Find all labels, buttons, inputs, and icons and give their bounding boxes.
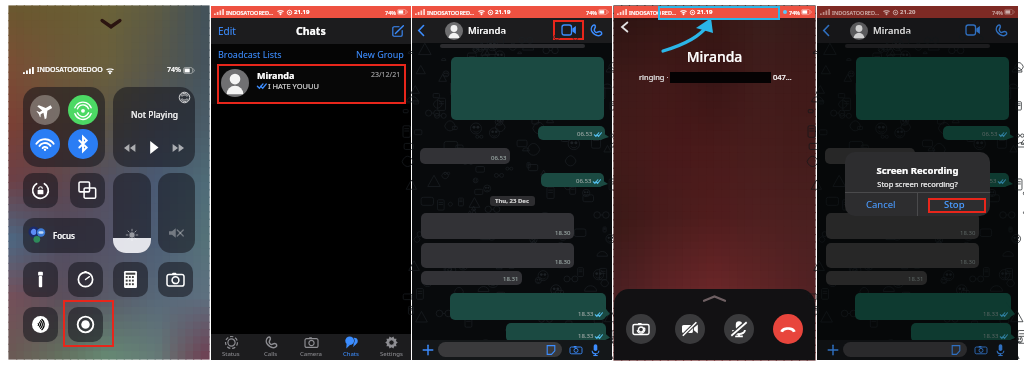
button[interactable]: Wi-Fi	[30, 129, 60, 159]
staticText: 06.53	[982, 130, 998, 138]
staticText: 06.53	[576, 177, 592, 185]
staticText: 06.53	[577, 130, 593, 138]
staticText: INDOSATOORED…	[832, 9, 880, 16]
button[interactable]	[538, 126, 605, 140]
button[interactable]: Edit	[218, 24, 236, 38]
button[interactable]: New chat	[391, 25, 404, 38]
staticText: Status	[222, 350, 240, 358]
button[interactable]	[826, 213, 979, 239]
button[interactable]: Stop	[918, 193, 990, 216]
button[interactable]: Flip camera	[626, 314, 656, 344]
button[interactable]	[421, 271, 522, 285]
button[interactable]: Back	[822, 24, 830, 37]
button[interactable]: New Group	[356, 48, 404, 60]
button[interactable]: Airplane mode	[30, 95, 60, 125]
button[interactable]: Attach	[422, 344, 434, 356]
staticText: Cancel	[866, 198, 896, 211]
button[interactable]: Miranda	[211, 64, 411, 104]
button[interactable]: Previous	[124, 144, 136, 152]
staticText: 06.53	[491, 154, 507, 162]
staticText: Camera	[300, 350, 322, 358]
button[interactable]: Voice call	[995, 24, 1008, 37]
button[interactable]	[826, 271, 927, 285]
staticText: 74%	[385, 9, 396, 16]
button[interactable]: Screen mirroring	[70, 173, 105, 208]
staticText: 18.33	[983, 332, 999, 340]
staticText: INDOSATOOREDOO	[37, 65, 103, 75]
staticText: Chats	[343, 350, 359, 358]
button[interactable]	[541, 173, 604, 187]
staticText: Miranda	[873, 24, 911, 37]
staticText: 06.53	[981, 177, 997, 185]
button[interactable]	[420, 148, 510, 164]
button[interactable]	[450, 293, 606, 320]
button[interactable]: Play	[149, 141, 159, 154]
button[interactable]	[421, 213, 574, 239]
button[interactable]	[421, 243, 574, 268]
staticText: 047…	[773, 72, 792, 82]
button[interactable]	[826, 243, 979, 268]
button[interactable]: Camera	[291, 334, 331, 360]
button[interactable]: Camera	[570, 345, 582, 355]
button[interactable]: Sticker	[546, 345, 556, 355]
button[interactable]	[843, 342, 967, 357]
button[interactable]: Calculator	[113, 262, 148, 297]
button[interactable]: Attach	[827, 344, 839, 356]
button[interactable]: Cellular data	[68, 95, 98, 125]
button[interactable]: Next	[172, 144, 184, 152]
button[interactable]: Screen recording	[68, 307, 103, 342]
button[interactable]: Bluetooth	[68, 129, 98, 159]
button[interactable]	[506, 323, 606, 342]
staticText: Miranda	[257, 69, 295, 81]
button[interactable]: Timer	[68, 262, 103, 297]
button[interactable]: Mute	[724, 314, 754, 344]
staticText: 74%	[992, 9, 1003, 16]
staticText: Chats	[296, 24, 326, 38]
staticText: Miranda	[468, 24, 506, 37]
button[interactable]: Status	[211, 334, 251, 360]
staticText: 18.30	[555, 258, 571, 266]
button[interactable]: Rotation lock	[23, 173, 58, 208]
button[interactable]	[825, 148, 915, 164]
button[interactable]: Settings	[371, 334, 411, 360]
button[interactable]: Voice message	[591, 344, 600, 356]
button[interactable]	[438, 342, 562, 357]
button[interactable]: Voice message	[996, 344, 1005, 356]
button[interactable]	[911, 323, 1011, 342]
button[interactable]: Chats	[331, 334, 371, 360]
staticText: I HATE YOUUU	[268, 81, 320, 91]
staticText: Screen Recording	[845, 164, 990, 177]
button[interactable]: Turn off camera	[675, 314, 705, 344]
button[interactable]: Sticker	[951, 345, 961, 355]
staticText: 18.33	[578, 310, 594, 318]
button[interactable]: Flashlight	[23, 262, 58, 297]
staticText: 18.31	[503, 275, 519, 283]
button[interactable]	[855, 293, 1011, 320]
button[interactable]	[943, 126, 1010, 140]
staticText: 21.19	[495, 8, 511, 16]
button[interactable]: Hearing	[23, 307, 58, 342]
button[interactable]: Video call	[966, 25, 980, 35]
button[interactable]: Cancel	[845, 193, 917, 216]
button[interactable]: Camera	[158, 262, 193, 297]
button[interactable]	[946, 173, 1009, 187]
staticText: Stop screen recording?	[845, 179, 990, 189]
button[interactable]: Voice call	[590, 24, 603, 37]
button[interactable]: Calls	[251, 334, 291, 360]
staticText: Not Playing	[131, 109, 178, 121]
button[interactable]: Back	[417, 24, 425, 37]
button[interactable]: Broadcast Lists	[218, 48, 282, 60]
staticText: Settings	[380, 350, 403, 358]
button[interactable]: AirPlay	[179, 92, 190, 103]
button[interactable]: Video call	[562, 25, 576, 35]
staticText: 18.30	[555, 229, 571, 237]
button[interactable]: Back	[620, 21, 629, 33]
staticText: 18.33	[578, 332, 594, 340]
button[interactable]: End call	[773, 314, 803, 344]
staticText: 21.20	[900, 8, 916, 16]
button[interactable]: Camera	[975, 345, 987, 355]
staticText: ringing ·	[639, 72, 669, 82]
